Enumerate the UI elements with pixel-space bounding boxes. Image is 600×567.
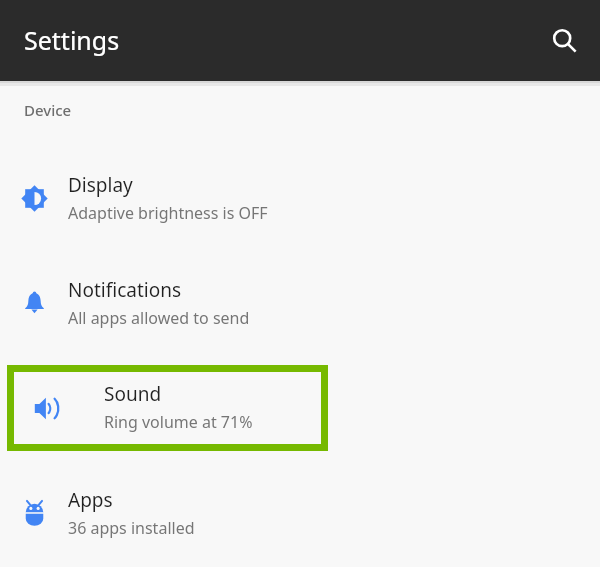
staticText: Apps — [68, 487, 113, 513]
button[interactable]: Search — [543, 19, 587, 63]
staticText: Device — [24, 100, 72, 120]
staticText: Settings — [24, 23, 120, 57]
button[interactable]: Sound — [7, 365, 328, 451]
button[interactable]: Display — [0, 146, 600, 251]
staticText: Notifications — [68, 277, 182, 303]
staticText: Adaptive brightness is OFF — [68, 202, 268, 224]
staticText: All apps allowed to send — [68, 307, 250, 329]
button[interactable]: Apps — [0, 461, 600, 566]
staticText: Display — [68, 172, 133, 198]
staticText: Ring volume at 71% — [104, 411, 253, 433]
staticText: Sound — [104, 381, 162, 407]
staticText: 36 apps installed — [68, 517, 195, 539]
button[interactable]: Notifications — [0, 251, 600, 356]
